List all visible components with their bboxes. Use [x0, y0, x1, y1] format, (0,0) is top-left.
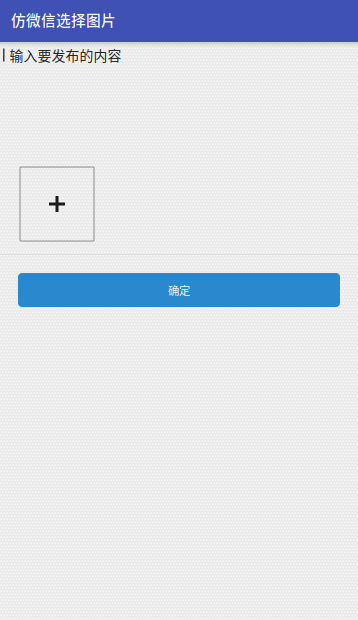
staticText: 输入要发布的内容 — [9, 45, 121, 65]
button[interactable]: 确定 — [18, 273, 340, 307]
button[interactable]: Add photo — [20, 167, 94, 241]
staticText: 仿微信选择图片 — [11, 9, 116, 30]
staticText: 确定 — [168, 282, 190, 298]
